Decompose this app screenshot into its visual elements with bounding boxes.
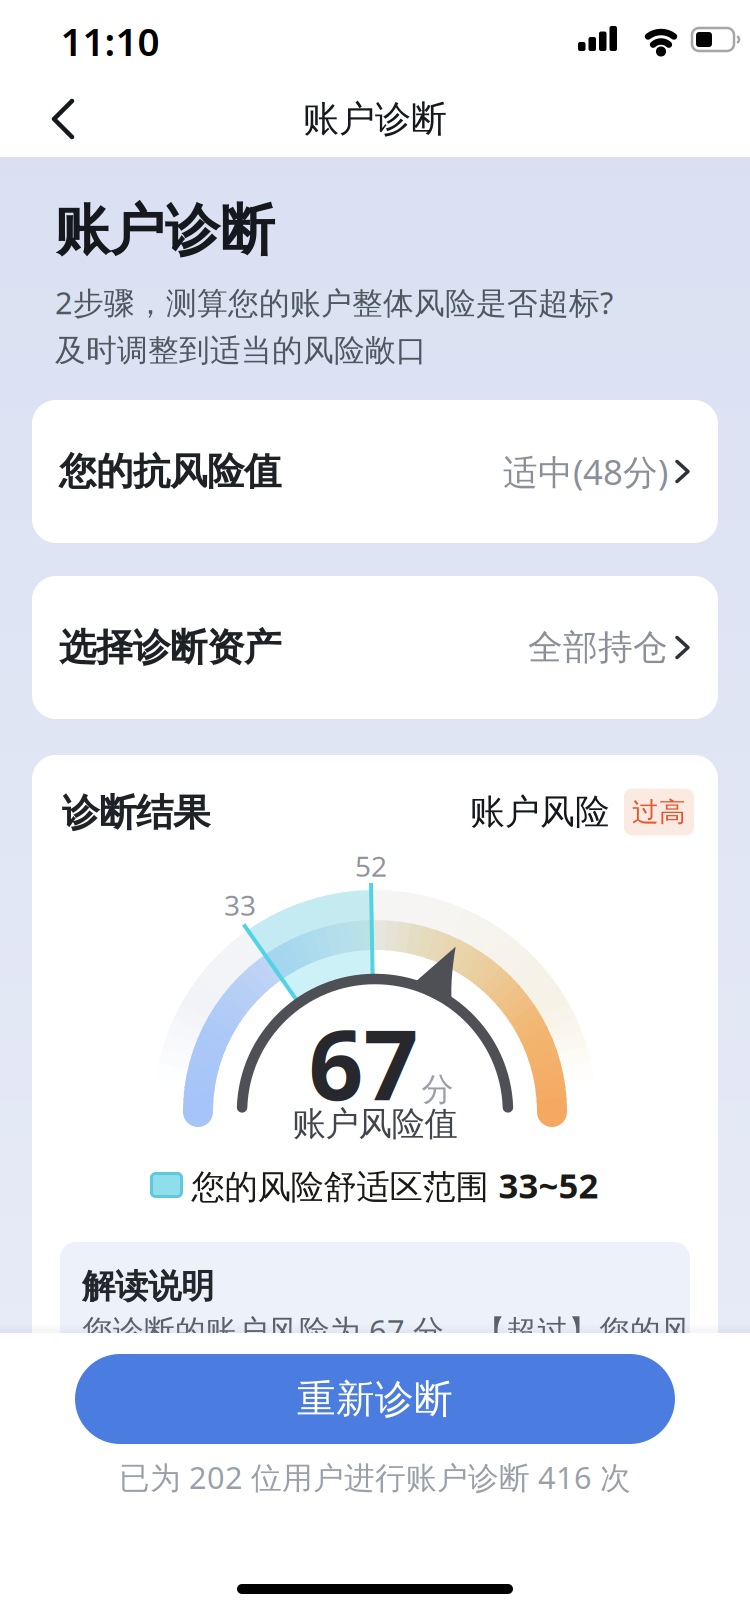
staticText: 账户风险 (470, 791, 610, 833)
staticText: 您的抗风险值 (59, 449, 281, 494)
button[interactable]: 您的抗风险值 (32, 400, 718, 543)
staticText: 重新诊断 (297, 1375, 453, 1423)
staticText: 账户风险值 (292, 1103, 457, 1144)
staticText: 选择诊断资产 (59, 625, 281, 670)
staticText: 账户诊断 (303, 97, 447, 141)
staticText: 及时调整到适当的风险敞口 (55, 332, 427, 369)
staticText: 账户诊断 (55, 197, 275, 264)
staticText: 您的风险舒适区范围 33~52 (191, 1162, 598, 1208)
staticText: 67 (308, 999, 418, 1127)
staticText: 11:10 (60, 15, 159, 67)
staticText: 适中(48分) (503, 448, 668, 494)
button[interactable]: 选择诊断资产 (32, 576, 718, 719)
staticText: 33 (224, 886, 256, 924)
staticText: 分 (421, 1070, 453, 1109)
staticText: 解读说明 (82, 1266, 214, 1307)
button[interactable]: 重新诊断 (75, 1354, 675, 1444)
staticText: 全部持仓 (528, 626, 668, 669)
staticText: 52 (355, 847, 387, 885)
staticText: 2步骤，测算您的账户整体风险是否超标? (55, 282, 613, 323)
staticText: 您诊断的账户风险为 67 分，【超过】您的风险舒适区 (82, 1310, 692, 1388)
button[interactable]: 返回 (42, 93, 86, 145)
staticText: 过高 (632, 796, 686, 828)
staticText: 已为 202 位用户进行账户诊断 416 次 (119, 1457, 631, 1497)
staticText: 诊断结果 (62, 790, 210, 836)
